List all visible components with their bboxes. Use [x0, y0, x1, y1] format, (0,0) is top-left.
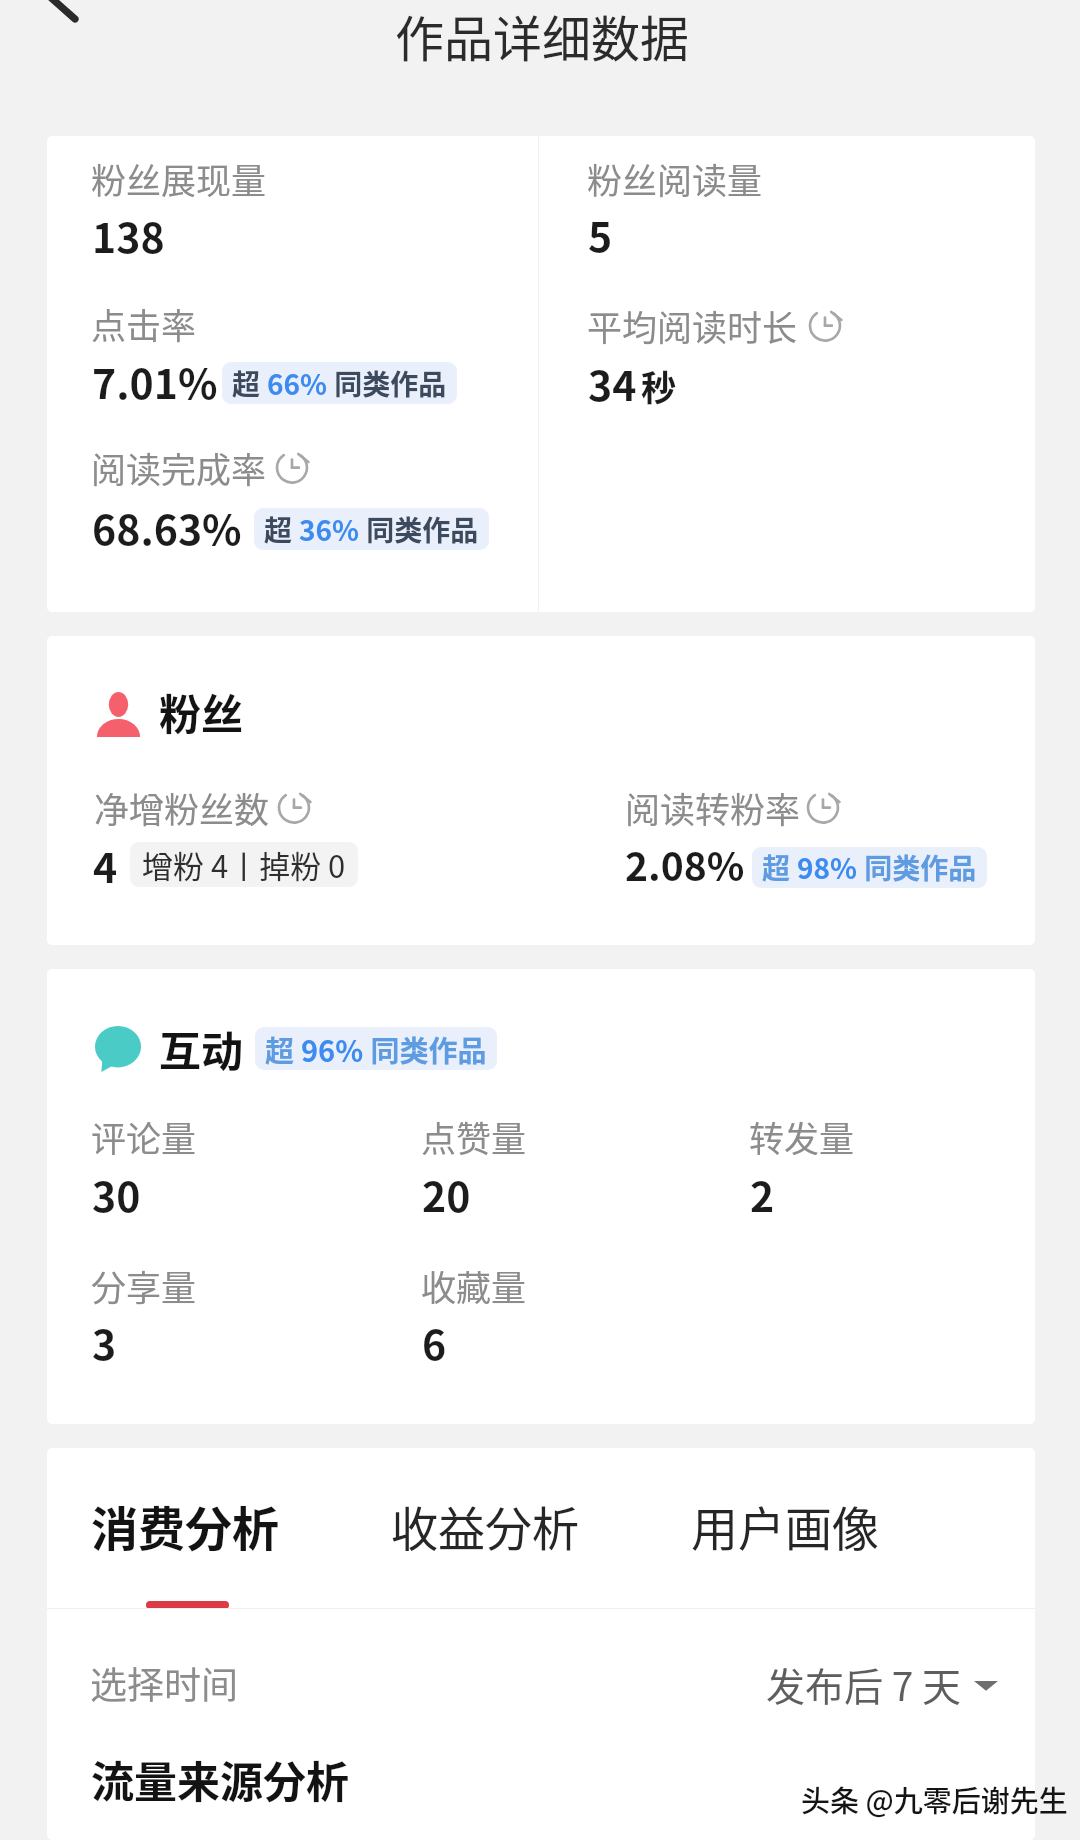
- staticText: 超: [232, 363, 267, 404]
- staticText: 68.63%: [92, 497, 242, 556]
- staticText: 粉丝: [159, 681, 244, 742]
- staticText: 4: [93, 835, 118, 894]
- staticText: 同类作品: [364, 1028, 487, 1070]
- button[interactable]: 超: [265, 1027, 487, 1070]
- staticText: 同类作品: [858, 847, 977, 888]
- staticText: 66%: [267, 363, 328, 404]
- staticText: 30: [92, 1164, 141, 1223]
- staticText: 3: [92, 1312, 117, 1371]
- staticText: 6: [422, 1312, 447, 1371]
- staticText: 作品详细数据: [395, 0, 690, 71]
- staticText: 收藏量: [421, 1260, 527, 1311]
- staticText: 点赞量: [421, 1111, 527, 1162]
- staticText: 超: [264, 509, 299, 550]
- staticText: 转发量: [749, 1111, 855, 1162]
- staticText: 2: [750, 1164, 775, 1223]
- staticText: 分享量: [91, 1260, 197, 1311]
- staticText: 阅读转粉率: [625, 782, 801, 833]
- button[interactable]: 消费分析: [67, 1458, 347, 1608]
- button[interactable]: 发布后 7 天: [766, 1656, 998, 1712]
- staticText: 互动: [159, 1018, 244, 1079]
- staticText: 评论量: [91, 1111, 197, 1162]
- button[interactable]: 超: [762, 847, 977, 888]
- staticText: 发布后 7 天: [766, 1656, 962, 1712]
- staticText: 阅读完成率: [91, 442, 267, 493]
- button[interactable]: 超: [232, 362, 447, 404]
- staticText: 头条 @九零后谢先生: [801, 1778, 1068, 1820]
- staticText: 34: [588, 353, 637, 412]
- staticText: 流量来源分析: [91, 1748, 349, 1810]
- staticText: 选择时间: [90, 1656, 238, 1710]
- staticText: 用户画像: [691, 1491, 879, 1559]
- staticText: 消费分析: [91, 1491, 279, 1559]
- staticText: 5: [588, 204, 613, 263]
- staticText: 20: [422, 1164, 471, 1223]
- staticText: 超: [265, 1028, 301, 1070]
- staticText: 98%: [797, 847, 858, 888]
- button[interactable]: 收益分析: [367, 1458, 647, 1608]
- staticText: 138: [92, 205, 165, 264]
- staticText: 秒: [641, 360, 677, 411]
- button[interactable]: Back: [28, 0, 100, 50]
- staticText: 平均阅读时长: [587, 300, 798, 351]
- staticText: 36%: [299, 509, 360, 550]
- staticText: 粉丝阅读量: [587, 153, 763, 204]
- button[interactable]: 用户画像: [667, 1458, 947, 1608]
- staticText: 同类作品: [360, 509, 479, 550]
- staticText: 增粉 4丨掉粉 0: [142, 842, 346, 887]
- staticText: 2.08%: [625, 836, 745, 892]
- staticText: 点击率: [91, 298, 197, 349]
- staticText: 收益分析: [391, 1491, 579, 1559]
- staticText: 超: [762, 847, 797, 888]
- staticText: 96%: [301, 1028, 364, 1070]
- staticText: 7.01%: [92, 351, 218, 410]
- staticText: 净增粉丝数: [94, 782, 270, 833]
- staticText: 粉丝展现量: [91, 153, 267, 204]
- staticText: 同类作品: [328, 363, 447, 404]
- button[interactable]: 超: [264, 508, 479, 550]
